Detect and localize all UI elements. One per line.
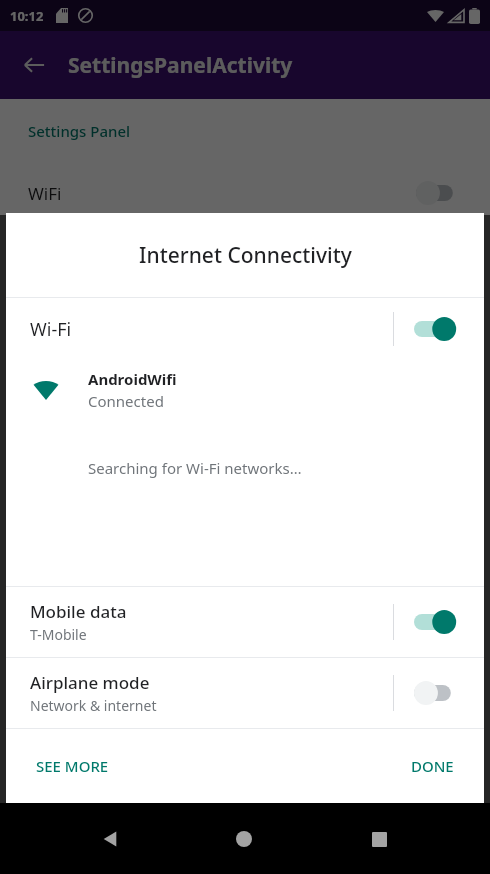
staticText: Searching for Wi-Fi networks… bbox=[88, 458, 302, 478]
staticText: T-Mobile bbox=[30, 625, 87, 644]
button[interactable]: DONE bbox=[397, 748, 468, 784]
staticText: WiFi bbox=[28, 182, 62, 205]
button[interactable]: SEE MORE bbox=[22, 748, 123, 784]
button[interactable]: AndroidWifi bbox=[6, 360, 484, 420]
staticText: AndroidWifi bbox=[88, 369, 177, 389]
staticText: Wi-Fi bbox=[30, 317, 72, 342]
staticText: Mobile data bbox=[30, 600, 127, 623]
button[interactable]: Airplane mode bbox=[6, 658, 484, 728]
button[interactable]: Home bbox=[220, 815, 268, 863]
staticText: Airplane mode bbox=[30, 671, 150, 694]
button[interactable]: Back bbox=[14, 45, 54, 85]
button[interactable]: Back bbox=[86, 815, 134, 863]
staticText: Internet Connectivity bbox=[139, 241, 352, 270]
staticText: Connected bbox=[88, 391, 164, 411]
staticText: 10:12 bbox=[10, 7, 44, 25]
button[interactable]: Recent apps bbox=[355, 815, 403, 863]
staticText: Settings Panel bbox=[28, 121, 131, 141]
staticText: DONE bbox=[411, 756, 454, 776]
staticText: SettingsPanelActivity bbox=[68, 51, 293, 80]
staticText: SEE MORE bbox=[36, 756, 109, 776]
button[interactable]: Wi-Fi bbox=[6, 298, 484, 360]
button[interactable]: Mobile data bbox=[6, 587, 484, 657]
button[interactable]: WiFi bbox=[0, 171, 490, 215]
staticText: Network & internet bbox=[30, 696, 157, 715]
